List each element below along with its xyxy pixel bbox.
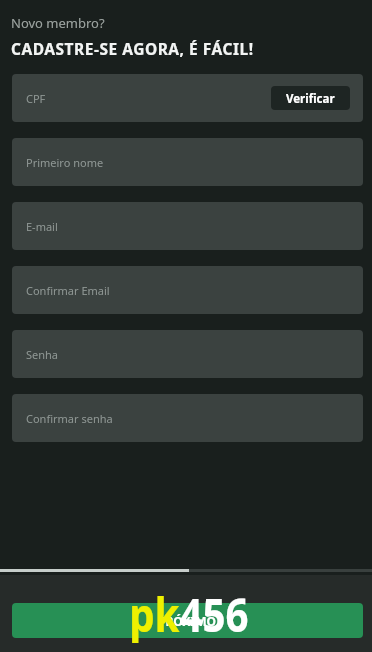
button[interactable]: Verificar xyxy=(271,86,350,110)
staticText: PRÓXIMO xyxy=(158,613,217,629)
button[interactable]: Primeiro nome xyxy=(12,138,363,186)
button[interactable]: E-mail xyxy=(12,202,363,250)
staticText: pk xyxy=(129,582,179,646)
staticText: Novo membro? xyxy=(11,14,105,32)
button[interactable]: Confirmar senha xyxy=(12,394,363,442)
button[interactable]: Senha xyxy=(12,330,363,378)
staticText: Confirmar Email xyxy=(26,283,110,298)
button[interactable]: CPF xyxy=(12,74,363,122)
staticText: Verificar xyxy=(286,91,335,107)
staticText: Senha xyxy=(26,347,59,362)
staticText: CADASTRE-SE AGORA, É FÁCIL! xyxy=(11,38,254,59)
staticText: CPF xyxy=(26,91,46,106)
staticText: Confirmar senha xyxy=(26,411,113,426)
button[interactable]: Confirmar Email xyxy=(12,266,363,314)
button[interactable]: PRÓXIMO xyxy=(12,603,363,638)
other: Progresso do cadastro xyxy=(0,569,372,572)
staticText: E-mail xyxy=(26,219,58,234)
staticText: 456 xyxy=(180,582,249,646)
staticText: Primeiro nome xyxy=(26,155,104,170)
